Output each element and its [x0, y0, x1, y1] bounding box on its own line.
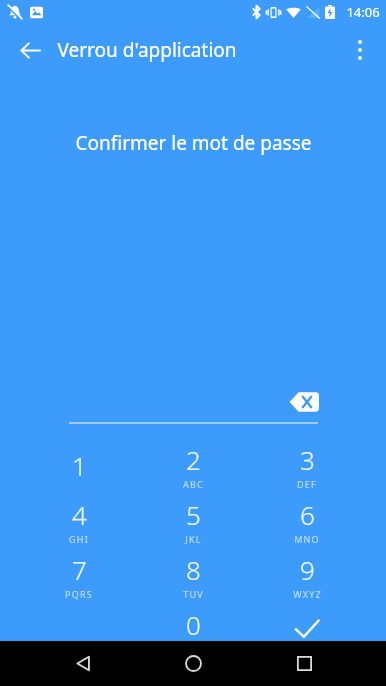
staticText: 3 — [300, 442, 315, 477]
staticText: 5 — [186, 497, 201, 532]
staticText: Verrou d'application — [57, 37, 237, 63]
button[interactable]: Recent apps — [276, 641, 332, 686]
staticText: 14:06 — [346, 3, 380, 21]
staticText: MNO — [294, 533, 320, 545]
button[interactable]: 9 — [250, 550, 364, 605]
staticText: 0 — [186, 607, 201, 642]
button[interactable]: 0 — [136, 605, 250, 660]
button[interactable]: Confirm — [250, 605, 364, 660]
button[interactable]: 8 — [136, 550, 250, 605]
button[interactable]: 7 — [22, 550, 136, 605]
button[interactable]: 3 — [250, 440, 364, 495]
staticText: GHI — [69, 533, 89, 545]
button[interactable]: Home — [165, 641, 221, 686]
button[interactable]: 6 — [250, 495, 364, 550]
staticText: DEF — [297, 478, 317, 490]
staticText: PQRS — [65, 588, 93, 600]
button[interactable]: 2 — [136, 440, 250, 495]
staticText: 7 — [72, 552, 87, 587]
staticText: Confirmer le mot de passe — [75, 130, 312, 156]
button[interactable]: 1 — [22, 440, 136, 495]
staticText: 2 — [186, 442, 201, 477]
staticText: 8 — [186, 552, 201, 587]
button[interactable]: 5 — [136, 495, 250, 550]
staticText: 9 — [300, 552, 315, 587]
staticText: ABC — [183, 478, 204, 490]
button[interactable]: 4 — [22, 495, 136, 550]
staticText: 6 — [300, 497, 315, 532]
staticText: JKL — [185, 533, 202, 545]
button[interactable]: Back — [8, 28, 52, 72]
button[interactable]: More options — [338, 28, 382, 72]
staticText: 4 — [72, 497, 87, 532]
button[interactable]: Back — [55, 641, 111, 686]
staticText: WXYZ — [293, 588, 322, 600]
staticText: TUV — [183, 588, 204, 600]
staticText: 1 — [72, 448, 87, 483]
button[interactable]: Backspace — [284, 386, 324, 418]
